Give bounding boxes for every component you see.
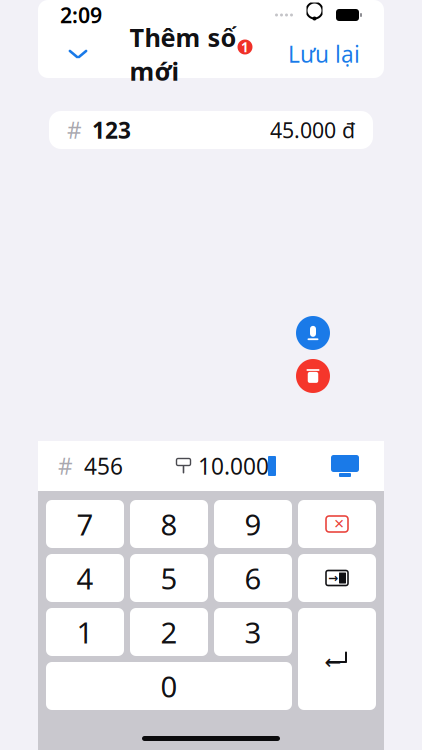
staticText: Lưu lại: [288, 39, 360, 69]
button[interactable]: 7: [46, 500, 124, 548]
button[interactable]: 1: [46, 608, 124, 656]
staticText: #: [67, 115, 82, 145]
staticText: Thêm số mới: [129, 20, 236, 88]
button[interactable]: Xuống dòng: [298, 608, 376, 710]
staticText: 8: [160, 504, 177, 543]
staticText: 1: [76, 612, 93, 651]
button[interactable]: 9: [214, 500, 292, 548]
button[interactable]: 5: [130, 554, 208, 602]
staticText: ✕: [333, 516, 344, 531]
button[interactable]: Xoá ký tự: [298, 500, 376, 548]
button[interactable]: Ẩn bàn phím: [326, 451, 364, 481]
staticText: 6: [244, 558, 261, 597]
staticText: 456: [84, 451, 123, 481]
button[interactable]: 6: [214, 554, 292, 602]
button[interactable]: Xoá: [296, 359, 330, 393]
staticText: #: [58, 451, 73, 481]
button[interactable]: 2: [130, 608, 208, 656]
staticText: 5: [160, 558, 177, 597]
staticText: 123: [92, 115, 131, 145]
button[interactable]: Lưu lại: [282, 37, 366, 71]
button[interactable]: Nhập bằng giọng nói: [296, 316, 330, 350]
staticText: 45.000 đ: [270, 116, 355, 144]
staticText: ←: [324, 651, 341, 673]
staticText: 1: [241, 38, 249, 56]
staticText: 10.000: [198, 451, 269, 481]
button[interactable]: 4: [46, 554, 124, 602]
button[interactable]: 8: [130, 500, 208, 548]
button[interactable]: 0: [46, 662, 292, 710]
staticText: 3: [244, 612, 261, 651]
staticText: 9: [244, 504, 261, 543]
button[interactable]: #: [49, 111, 373, 149]
staticText: 2: [160, 612, 177, 651]
staticText: 2:09: [60, 1, 102, 29]
staticText: 0: [160, 666, 177, 705]
button[interactable]: 3: [214, 608, 292, 656]
button[interactable]: Tab: [298, 554, 376, 602]
staticText: 4: [76, 558, 93, 597]
staticText: →: [328, 571, 338, 585]
button[interactable]: Đóng: [56, 37, 100, 71]
staticText: 7: [76, 504, 93, 543]
